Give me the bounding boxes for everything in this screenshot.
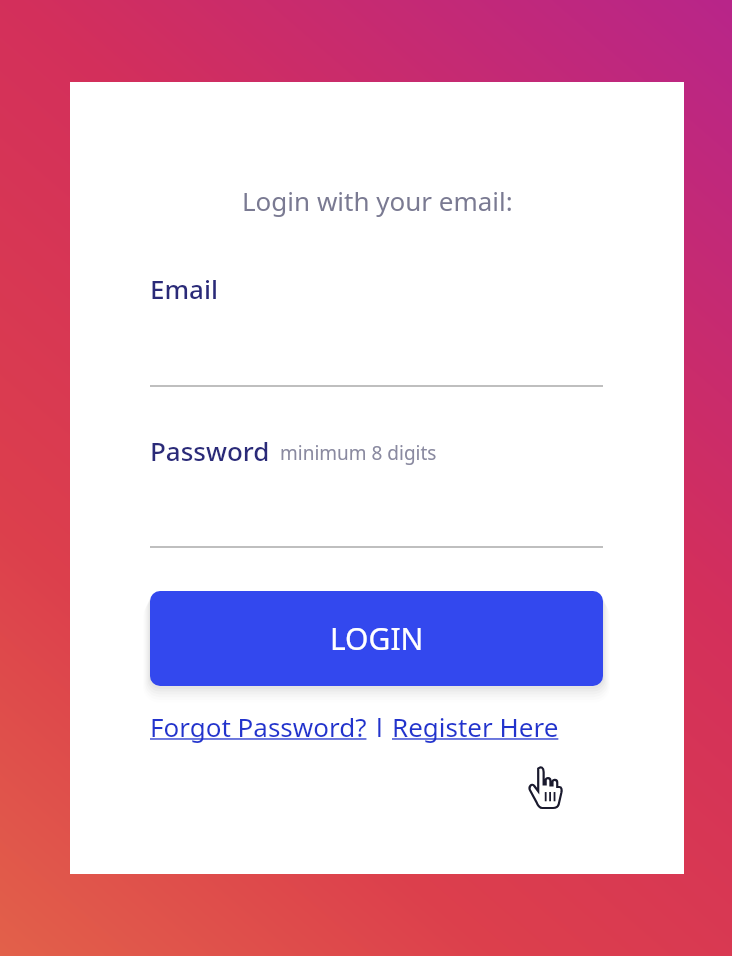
staticText: l [376, 709, 383, 744]
other: Pointer [528, 766, 562, 808]
staticText: minimum 8 digits [280, 440, 437, 466]
staticText: Forgot Password? [150, 709, 367, 744]
button[interactable]: Forgot Password? [150, 709, 367, 744]
button[interactable] [150, 306, 603, 387]
staticText: Password [150, 433, 270, 468]
staticText: Register Here [392, 709, 559, 744]
button[interactable]: LOGIN [150, 591, 603, 686]
staticText: Email [150, 271, 219, 306]
button[interactable]: Register Here [392, 709, 559, 744]
button[interactable] [150, 468, 603, 548]
staticText: Login with your email: [242, 183, 513, 218]
staticText: LOGIN [330, 618, 424, 659]
